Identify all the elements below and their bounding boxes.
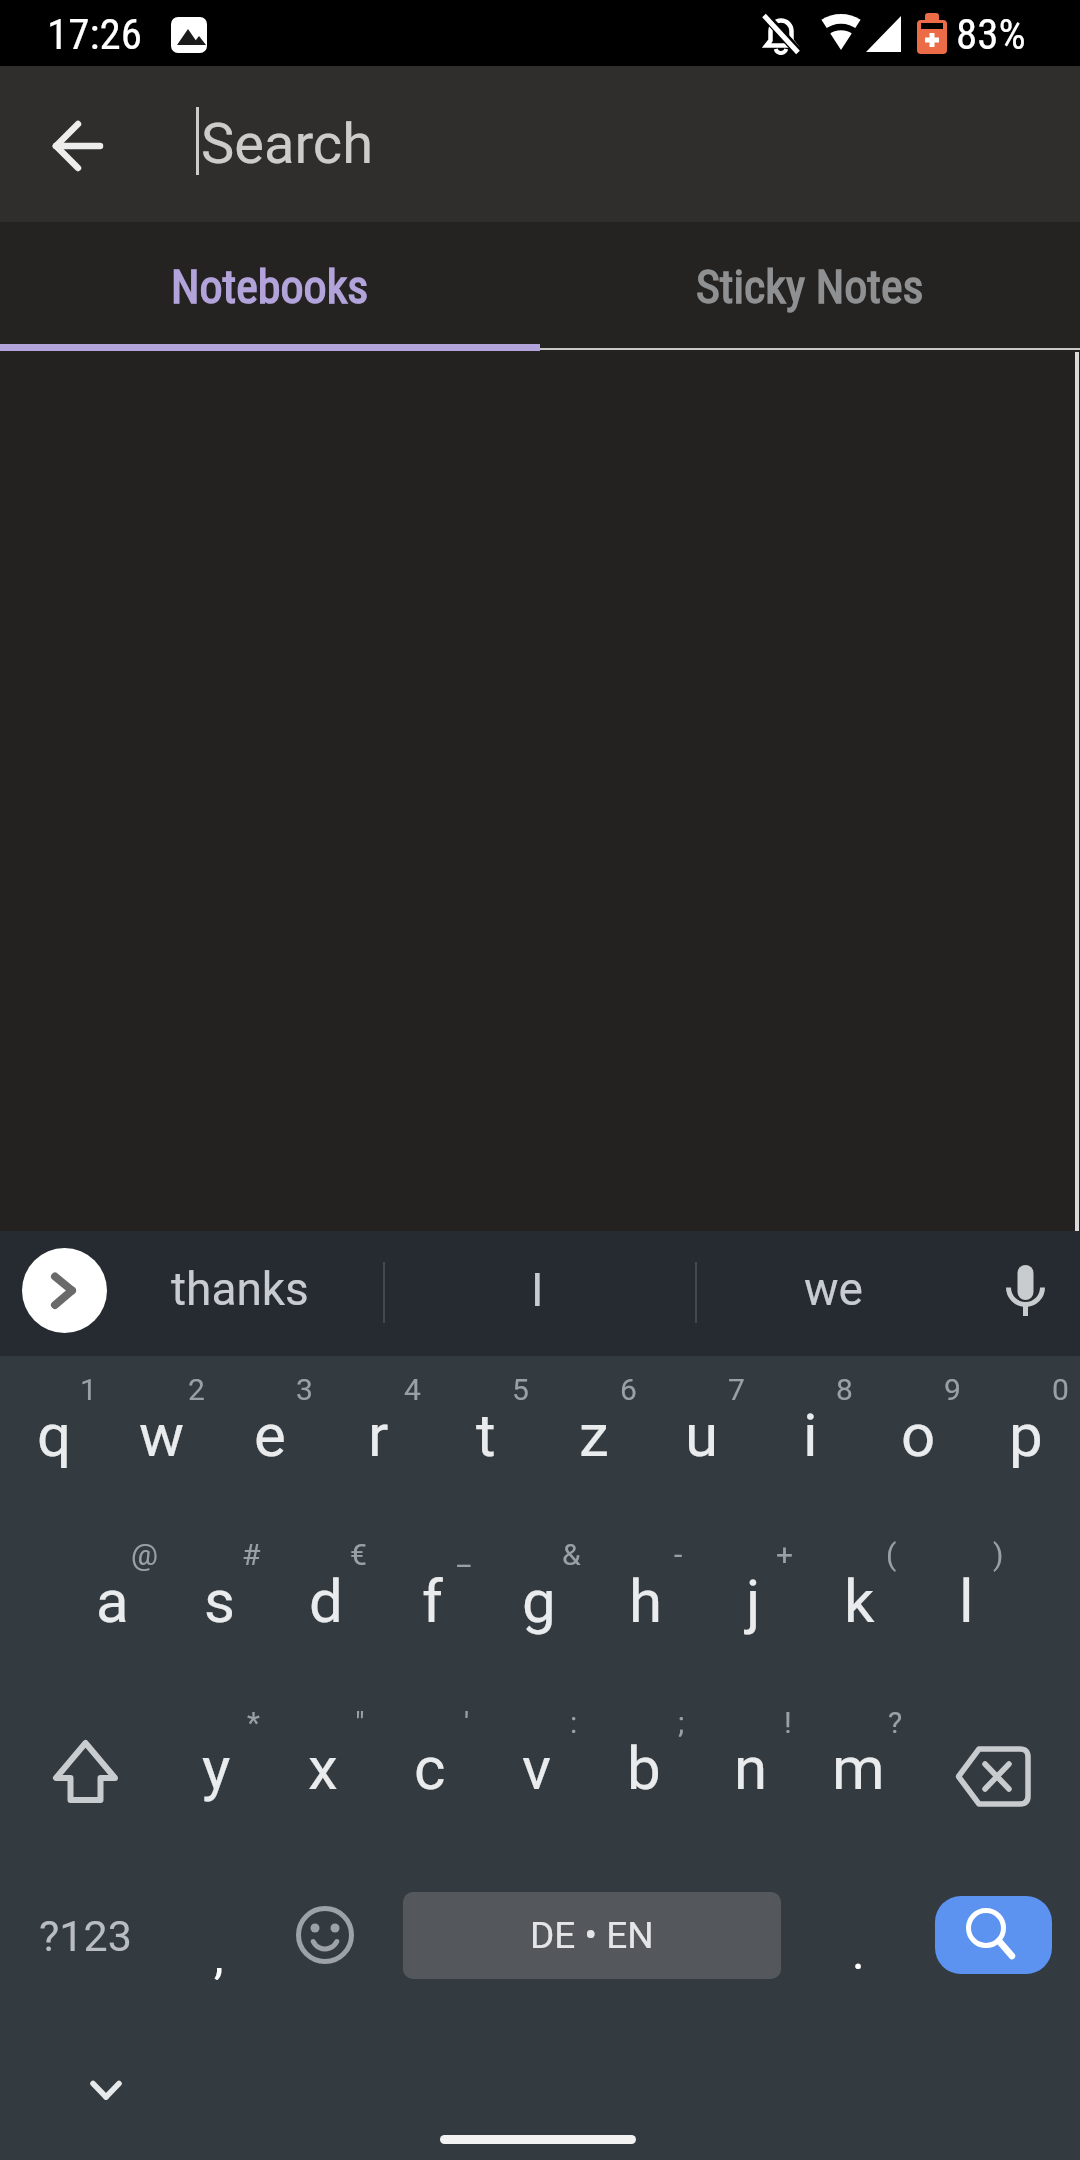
staticText: q bbox=[37, 1400, 72, 1470]
staticText: v bbox=[522, 1733, 552, 1803]
button[interactable] bbox=[939, 1690, 1047, 1852]
button[interactable] bbox=[22, 1248, 107, 1333]
staticText: e bbox=[254, 1400, 286, 1470]
button[interactable]: o bbox=[865, 1353, 971, 1517]
staticText: , bbox=[214, 1928, 224, 1984]
staticText: 2 bbox=[188, 1372, 205, 1407]
button[interactable]: thanks bbox=[105, 1227, 375, 1351]
button[interactable]: f bbox=[379, 1519, 485, 1683]
staticText: : bbox=[570, 1705, 578, 1740]
staticText: + bbox=[776, 1537, 794, 1572]
staticText: 9 bbox=[944, 1372, 961, 1407]
staticText: o bbox=[901, 1400, 936, 1470]
button[interactable]: l bbox=[913, 1519, 1019, 1683]
staticText: . bbox=[852, 1924, 865, 1980]
button[interactable] bbox=[56, 2043, 156, 2143]
button[interactable] bbox=[31, 1690, 139, 1852]
button[interactable]: d bbox=[273, 1519, 379, 1683]
staticText: @ bbox=[131, 1537, 158, 1572]
staticText: 3 bbox=[296, 1372, 313, 1407]
button[interactable]: g bbox=[486, 1519, 592, 1683]
staticText: n bbox=[734, 1733, 768, 1803]
staticText: w bbox=[139, 1400, 185, 1470]
staticText: Notebooks bbox=[171, 260, 369, 314]
staticText: ( bbox=[886, 1537, 897, 1572]
button[interactable]: p bbox=[973, 1353, 1079, 1517]
staticText: 5 bbox=[512, 1372, 529, 1407]
staticText: m bbox=[832, 1733, 885, 1803]
staticText: h bbox=[629, 1566, 663, 1636]
button[interactable] bbox=[935, 1896, 1052, 1974]
staticText: f bbox=[422, 1566, 443, 1636]
staticText: y bbox=[202, 1733, 231, 1803]
staticText: k bbox=[844, 1566, 875, 1636]
staticText: 0 bbox=[1052, 1372, 1069, 1407]
button[interactable]: we bbox=[718, 1227, 948, 1351]
staticText: Search bbox=[201, 111, 374, 177]
staticText: 83% bbox=[956, 9, 1026, 59]
staticText: 4 bbox=[404, 1372, 421, 1407]
staticText: thanks bbox=[171, 1262, 309, 1316]
button[interactable]: j bbox=[700, 1519, 806, 1683]
button[interactable]: ?123 bbox=[10, 1854, 160, 2018]
staticText: - bbox=[674, 1537, 683, 1572]
button[interactable]: I bbox=[402, 1228, 672, 1352]
staticText: r bbox=[368, 1400, 389, 1470]
button[interactable]: Sticky Notes bbox=[540, 222, 1080, 352]
button[interactable]: w bbox=[109, 1353, 215, 1517]
staticText: we bbox=[804, 1262, 863, 1316]
staticText: " bbox=[355, 1705, 365, 1740]
button[interactable]: e bbox=[217, 1353, 323, 1517]
staticText: * bbox=[247, 1705, 260, 1740]
staticText: l bbox=[959, 1566, 974, 1636]
staticText: u bbox=[685, 1400, 719, 1470]
staticText: g bbox=[522, 1566, 556, 1636]
button[interactable]: q bbox=[1, 1353, 107, 1517]
staticText: 1 bbox=[80, 1372, 97, 1407]
staticText: _ bbox=[457, 1537, 471, 1572]
button[interactable]: , bbox=[179, 1896, 259, 2016]
staticText: ) bbox=[993, 1537, 1004, 1572]
staticText: 7 bbox=[728, 1372, 745, 1407]
button[interactable]: y bbox=[163, 1686, 269, 1850]
button[interactable]: c bbox=[377, 1686, 483, 1850]
button[interactable]: r bbox=[325, 1353, 431, 1517]
button[interactable]: v bbox=[484, 1686, 590, 1850]
staticText: s bbox=[204, 1566, 235, 1636]
button[interactable]: x bbox=[270, 1686, 376, 1850]
staticText: 6 bbox=[620, 1372, 637, 1407]
button[interactable]: DE • EN bbox=[403, 1892, 781, 1979]
button[interactable] bbox=[271, 1881, 379, 1989]
button[interactable]: b bbox=[591, 1686, 697, 1850]
button[interactable]: s bbox=[166, 1519, 272, 1683]
button[interactable]: . bbox=[818, 1892, 898, 2012]
button[interactable]: m bbox=[805, 1686, 911, 1850]
staticText: b bbox=[627, 1733, 661, 1803]
staticText: ! bbox=[784, 1705, 792, 1740]
staticText: x bbox=[308, 1733, 338, 1803]
staticText: 8 bbox=[836, 1372, 853, 1407]
staticText: ' bbox=[464, 1705, 470, 1740]
staticText: z bbox=[579, 1400, 609, 1470]
staticText: ?123 bbox=[39, 1911, 132, 1961]
staticText: a bbox=[96, 1566, 129, 1636]
button[interactable] bbox=[986, 1252, 1066, 1332]
button[interactable]: z bbox=[541, 1353, 647, 1517]
button[interactable]: t bbox=[433, 1353, 539, 1517]
button[interactable]: h bbox=[593, 1519, 699, 1683]
staticText: j bbox=[746, 1566, 761, 1636]
button[interactable] bbox=[30, 99, 124, 193]
button[interactable]: u bbox=[649, 1353, 755, 1517]
button[interactable]: i bbox=[757, 1353, 863, 1517]
button[interactable]: a bbox=[59, 1519, 165, 1683]
staticText: 17:26 bbox=[47, 9, 142, 59]
staticText: & bbox=[562, 1537, 581, 1572]
button[interactable]: Notebooks bbox=[0, 222, 540, 352]
staticText: t bbox=[476, 1400, 496, 1470]
staticText: I bbox=[531, 1263, 544, 1317]
staticText: € bbox=[350, 1537, 367, 1572]
staticText: i bbox=[803, 1400, 818, 1470]
button[interactable]: k bbox=[806, 1519, 912, 1683]
button[interactable]: n bbox=[698, 1686, 804, 1850]
staticText: p bbox=[1009, 1400, 1043, 1470]
